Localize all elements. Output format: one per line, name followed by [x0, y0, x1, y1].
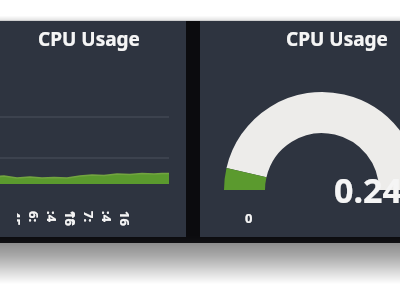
staticText: 0.24 — [334, 167, 400, 213]
button[interactable]: CPU Usage — [0, 21, 186, 237]
staticText: CPU Usage — [286, 26, 388, 52]
button[interactable]: CPU Usage — [200, 21, 400, 237]
staticText: CPU Usage — [38, 26, 140, 52]
staticText: 16:47:00 — [72, 211, 134, 229]
staticText: 16:46:45 — [17, 211, 79, 229]
staticText: 0 — [245, 209, 253, 227]
